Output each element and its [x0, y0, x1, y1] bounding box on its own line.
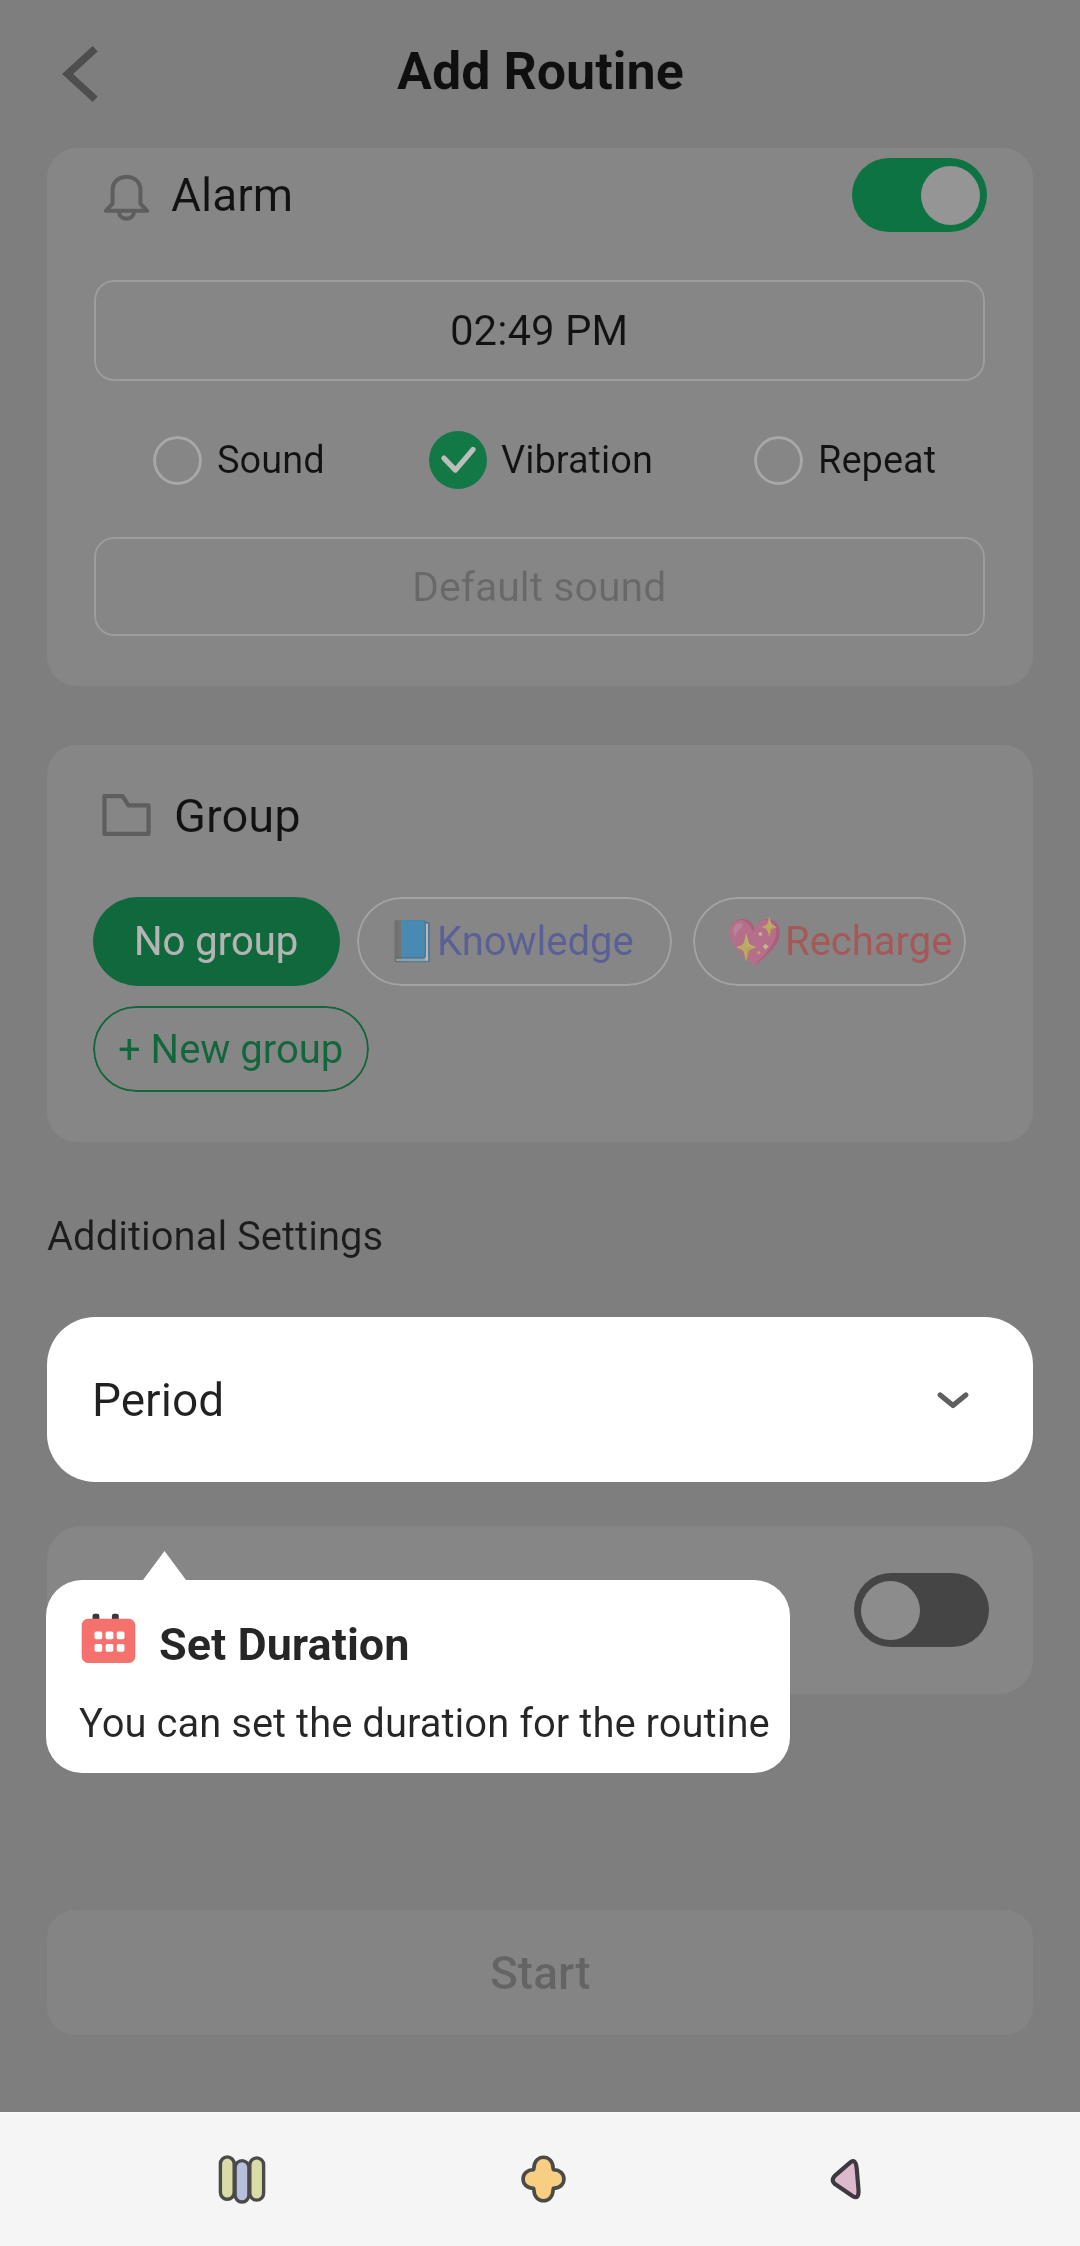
button[interactable]: Statistics: [172, 2112, 312, 2246]
button[interactable]: Alarm enabled: [852, 158, 987, 232]
button[interactable]: Period: [47, 1317, 1033, 1482]
staticText: You can set the duration for the routine: [79, 1700, 770, 1747]
staticText: Default sound: [412, 563, 667, 611]
staticText: Additional Settings: [47, 1213, 384, 1260]
staticText: Period: [92, 1373, 225, 1427]
staticText: Alarm: [171, 168, 294, 222]
staticText: Knowledge: [437, 918, 634, 965]
button[interactable]: Repeat: [754, 426, 937, 494]
staticText: Vibration: [501, 438, 653, 483]
button[interactable]: Profile: [775, 2112, 915, 2246]
staticText: + New group: [118, 1026, 344, 1073]
staticText: Add Routine: [397, 41, 684, 102]
button[interactable]: No group: [93, 897, 340, 986]
staticText: Set Duration: [159, 1618, 410, 1671]
staticText: Repeat: [818, 438, 937, 483]
button[interactable]: Sound: [153, 426, 325, 494]
button[interactable]: Default sound: [94, 537, 985, 636]
button[interactable]: Vibration: [429, 426, 653, 494]
button[interactable]: Add routine: [473, 2112, 613, 2246]
button[interactable]: 📘: [357, 897, 672, 986]
button[interactable]: + New group: [93, 1006, 369, 1092]
staticText: Sound: [217, 438, 325, 483]
button[interactable]: Back: [32, 24, 132, 124]
button[interactable]: Set duration disabled: [854, 1573, 989, 1647]
staticText: 02:49 PM: [450, 306, 629, 355]
button[interactable]: Start: [47, 1910, 1033, 2035]
button[interactable]: Set duration disabled: [47, 1526, 1033, 1694]
button[interactable]: 02:49 PM: [94, 280, 985, 381]
staticText: 📘: [387, 918, 437, 965]
staticText: 💖: [726, 915, 784, 969]
staticText: Start: [490, 1946, 591, 2000]
button[interactable]: 💖: [693, 897, 966, 986]
staticText: Recharge: [785, 918, 953, 965]
staticText: Group: [174, 788, 301, 843]
staticText: No group: [134, 918, 299, 965]
